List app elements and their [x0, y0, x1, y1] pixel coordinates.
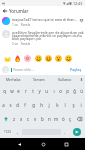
- button[interactable]: ğ: [71, 84, 78, 98]
- button[interactable]: ş: [69, 98, 77, 112]
- button[interactable]: Shift: [0, 112, 11, 126]
- staticText: n: [48, 116, 51, 122]
- staticText: t: [32, 88, 34, 94]
- button[interactable]: q: [0, 84, 8, 98]
- staticText: d: [16, 102, 19, 108]
- staticText: ozelilitim Sevgilerimle sen de alıyordum…: [12, 30, 84, 41]
- button[interactable]: ?123: [0, 126, 14, 138]
- button[interactable]: ç: [67, 112, 74, 126]
- staticText: ü: [80, 88, 83, 94]
- staticText: a: [2, 102, 5, 108]
- button[interactable]: .: [61, 126, 69, 138]
- staticText: ş: [72, 102, 75, 108]
- staticText: w: [10, 88, 14, 94]
- staticText: .: [64, 129, 66, 135]
- staticText: ğ: [73, 88, 76, 94]
- button[interactable]: Tamam: [26, 75, 52, 84]
- button[interactable]: j: [45, 98, 53, 112]
- staticText: v: [34, 116, 37, 122]
- staticText: s: [9, 102, 12, 108]
- button[interactable]: n: [46, 112, 53, 126]
- button[interactable]: ü: [78, 84, 85, 98]
- button[interactable]: Emoji reaction: [13, 54, 21, 62]
- staticText: Paylaş: [70, 67, 82, 72]
- button[interactable]: Voice input: [78, 75, 85, 84]
- button[interactable]: p: [64, 84, 71, 98]
- button[interactable]: Recent apps: [61, 139, 71, 149]
- button[interactable]: w: [8, 84, 15, 98]
- button[interactable]: Emoji reaction: [54, 54, 62, 62]
- button[interactable]: ı: [50, 84, 57, 98]
- button[interactable]: Emoji reaction: [23, 54, 31, 62]
- button[interactable]: ö: [60, 112, 67, 126]
- button[interactable]: h: [37, 98, 45, 112]
- button[interactable]: c: [25, 112, 32, 126]
- button[interactable]: Emoji reaction: [64, 54, 72, 62]
- staticText: m: [54, 116, 59, 122]
- button[interactable]: Back: [0, 6, 9, 15]
- staticText: x: [20, 116, 23, 122]
- button[interactable]: b: [39, 112, 46, 126]
- button[interactable]: Emoji reaction: [44, 54, 52, 62]
- button[interactable]: t: [29, 84, 36, 98]
- button[interactable]: Send: [73, 128, 81, 136]
- button[interactable]: a: [0, 98, 7, 112]
- staticText: h: [40, 102, 43, 108]
- button[interactable]: Emoji reaction: [3, 54, 11, 62]
- staticText: j: [48, 102, 50, 108]
- button[interactable]: m: [53, 112, 60, 126]
- button[interactable]: f: [21, 98, 29, 112]
- button[interactable]: z: [11, 112, 18, 126]
- button[interactable]: Back: [14, 139, 24, 149]
- staticText: ç: [69, 116, 72, 122]
- staticText: 2 sa Yanıtla: [12, 42, 31, 46]
- button[interactable]: Kullanıcı: [52, 75, 78, 84]
- staticText: k: [56, 102, 59, 108]
- staticText: u: [45, 88, 48, 94]
- button[interactable]: ozelilitim Sevgilerimle sen de alıyordum…: [0, 30, 85, 46]
- staticText: f: [24, 102, 26, 108]
- button[interactable]: r: [22, 84, 29, 98]
- staticText: q: [3, 88, 6, 94]
- staticText: ö: [62, 116, 65, 122]
- staticText: ?123: [4, 130, 11, 134]
- button[interactable]: i: [77, 98, 85, 112]
- staticText: z: [13, 116, 16, 122]
- button[interactable]: g: [29, 98, 37, 112]
- button[interactable]: ,: [14, 126, 22, 138]
- staticText: p: [66, 88, 69, 94]
- staticText: 1 sa Yanıtla: [12, 23, 31, 27]
- staticText: Tamam: [33, 77, 45, 82]
- staticText: l: [64, 102, 66, 108]
- button[interactable]: v: [32, 112, 39, 126]
- button[interactable]: Like: [78, 17, 84, 23]
- staticText: e: [17, 88, 20, 94]
- staticText: Kullanıcı: [58, 77, 72, 82]
- button[interactable]: x: [18, 112, 25, 126]
- staticText: 12:43: [73, 1, 83, 6]
- button[interactable]: mayisa7a47 benzo que te ama di thanal :): [0, 17, 85, 27]
- button[interactable]: y: [36, 84, 43, 98]
- button[interactable]: Emoji reaction: [34, 54, 42, 62]
- button[interactable]: d: [14, 98, 21, 112]
- button[interactable]: o: [57, 84, 64, 98]
- button[interactable]: Backspace: [74, 112, 85, 126]
- staticText: Merhaba: [6, 77, 21, 82]
- staticText: o: [59, 88, 62, 94]
- button[interactable]: Home: [38, 139, 48, 149]
- staticText: Yorum ekle...: [13, 67, 34, 72]
- button[interactable]: k: [53, 98, 61, 112]
- button[interactable]: s: [7, 98, 14, 112]
- staticText: b: [41, 116, 44, 122]
- button[interactable]: Merhaba: [0, 75, 26, 84]
- staticText: r: [25, 88, 27, 94]
- button[interactable]: l: [61, 98, 69, 112]
- button[interactable]: u: [43, 84, 50, 98]
- staticText: ı: [53, 88, 55, 94]
- button[interactable]: e: [15, 84, 22, 98]
- button[interactable]: Paylaş: [69, 66, 83, 73]
- staticText: i: [80, 102, 82, 108]
- staticText: mayisa7a47 benzo que te ama di thanal :): [12, 17, 78, 22]
- staticText: y: [38, 88, 41, 94]
